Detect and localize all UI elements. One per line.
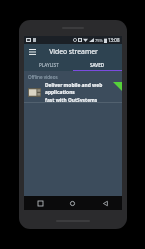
button[interactable]: Recent apps <box>24 196 56 210</box>
button[interactable]: Back <box>89 196 122 210</box>
button[interactable]: SAVED <box>73 59 122 70</box>
staticText: Video streamer <box>49 47 98 56</box>
staticText: 75% <box>95 38 103 43</box>
button[interactable]: Deliver mobile and web applications <box>24 82 122 102</box>
button[interactable]: Home <box>56 196 89 210</box>
staticText: Deliver mobile and web applications <box>45 82 119 96</box>
staticText: SAVED <box>90 62 105 68</box>
button[interactable]: Open navigation drawer <box>26 46 38 58</box>
staticText: Offline videos <box>28 74 58 80</box>
staticText: fast with OutSystems <box>45 97 98 102</box>
staticText: 13:08 <box>108 37 120 43</box>
staticText: PLAYLIST <box>39 62 59 68</box>
button[interactable]: PLAYLIST <box>24 59 73 70</box>
